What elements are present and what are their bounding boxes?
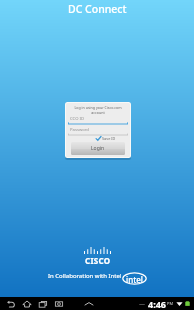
staticText: Save ID — [102, 136, 116, 141]
button[interactable]: DC Connect — [0, 0, 194, 18]
staticText: 4:46 — [148, 298, 166, 310]
button[interactable]: Screenshot — [54, 299, 64, 309]
button[interactable]: CCO ID — [68, 115, 128, 125]
button[interactable]: Password — [68, 126, 128, 136]
staticText: DC Connect — [68, 2, 127, 16]
staticText: PM — [167, 301, 174, 306]
button[interactable]: Home — [22, 299, 32, 309]
staticText: intel — [126, 274, 143, 285]
staticText: CCO ID — [70, 116, 84, 122]
staticText: — — [139, 300, 146, 308]
button[interactable]: Recents — [38, 299, 48, 309]
staticText: Login — [91, 145, 105, 152]
staticText: In Collaboration with Intel — [48, 272, 122, 280]
staticText: Password — [70, 127, 89, 133]
button[interactable]: Login — [71, 142, 125, 155]
button[interactable]: Back — [6, 299, 16, 309]
button[interactable]: Expand — [84, 299, 94, 309]
button[interactable]: Save ID — [96, 135, 116, 142]
staticText: CISCO — [85, 255, 111, 266]
staticText: Log in using your Cisco.com account — [69, 105, 127, 115]
